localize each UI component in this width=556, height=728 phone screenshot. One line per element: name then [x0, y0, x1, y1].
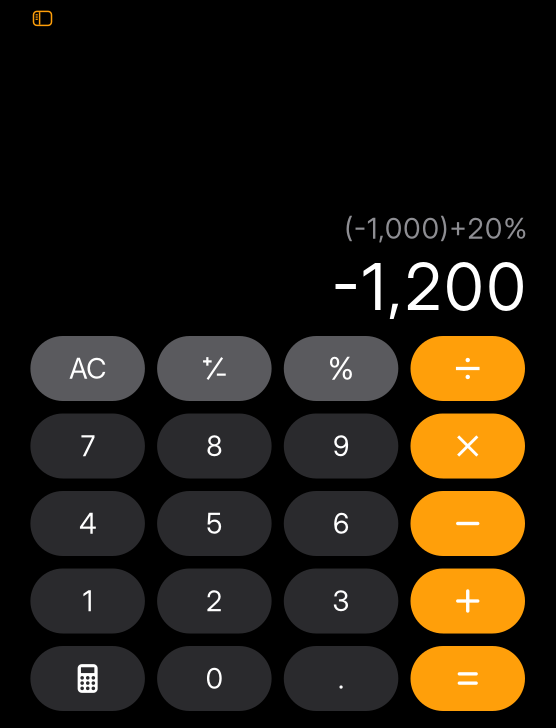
- button[interactable]: %: [284, 336, 398, 401]
- button[interactable]: 5: [157, 491, 272, 556]
- staticText: (-1,000)+20%: [345, 211, 527, 245]
- button[interactable]: Plus minus: [157, 336, 272, 401]
- button[interactable]: 0: [157, 646, 272, 711]
- button[interactable]: Add: [410, 568, 525, 633]
- staticText: 0: [206, 662, 223, 695]
- staticText: 6: [333, 507, 349, 540]
- staticText: 9: [333, 429, 349, 463]
- staticText: 2: [206, 584, 222, 618]
- staticText: -1,200: [332, 248, 525, 325]
- staticText: 4: [79, 507, 96, 540]
- button[interactable]: Calculator modes: [20, 0, 64, 36]
- button[interactable]: 1: [30, 568, 145, 633]
- button[interactable]: 9: [284, 413, 398, 478]
- staticText: 7: [81, 429, 95, 463]
- button[interactable]: 3: [284, 568, 398, 633]
- button[interactable]: 6: [284, 491, 398, 556]
- button[interactable]: AC: [30, 336, 145, 401]
- button[interactable]: 2: [157, 568, 272, 633]
- button[interactable]: .: [284, 646, 398, 711]
- staticText: .: [338, 662, 344, 695]
- button[interactable]: 7: [30, 413, 145, 478]
- button[interactable]: Equals: [410, 646, 525, 711]
- button[interactable]: Subtract: [410, 491, 525, 556]
- staticText: 8: [206, 429, 222, 463]
- button[interactable]: 8: [157, 413, 272, 478]
- staticText: 5: [206, 507, 222, 540]
- button[interactable]: 4: [30, 491, 145, 556]
- button[interactable]: Scientific calculator: [30, 646, 145, 711]
- staticText: %: [328, 350, 354, 387]
- button[interactable]: Multiply: [410, 413, 525, 478]
- staticText: AC: [69, 352, 106, 385]
- staticText: 3: [333, 584, 350, 618]
- button[interactable]: Divide: [410, 336, 525, 401]
- staticText: 1: [83, 584, 93, 618]
